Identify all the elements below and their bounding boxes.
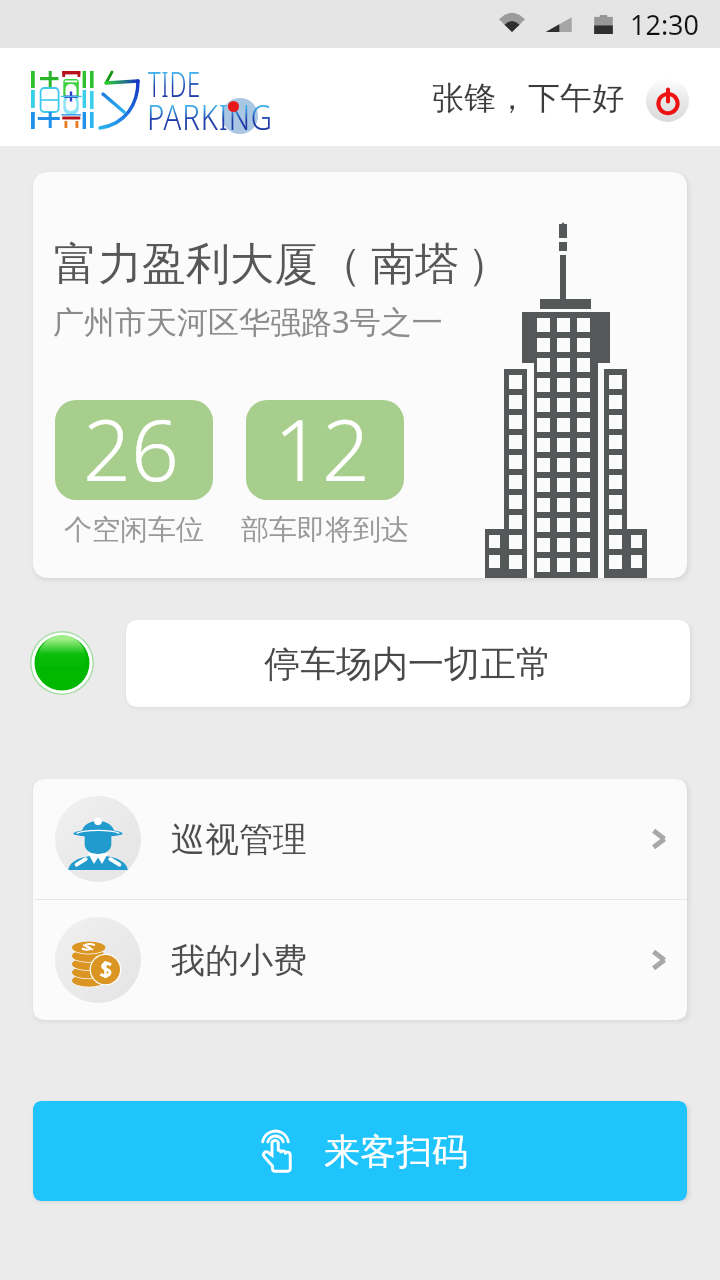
staticText: 我的小费: [171, 939, 307, 982]
staticText: 12:30: [630, 6, 700, 43]
staticText: 南塔: [371, 237, 459, 292]
staticText: 部车即将到达: [241, 512, 409, 547]
staticText: TIDE: [148, 61, 201, 107]
staticText: 停车场内一切正常: [264, 641, 552, 686]
button[interactable]: 巡视管理: [33, 779, 687, 899]
button[interactable]: Power: [646, 79, 689, 122]
button[interactable]: 来客扫码: [33, 1101, 687, 1201]
staticText: 巡视管理: [171, 818, 307, 861]
staticText: （: [318, 237, 362, 292]
button[interactable]: 停车场内一切正常: [126, 620, 690, 707]
staticText: 广州市天河区华强路3号之一: [53, 300, 443, 342]
staticText: 来客扫码: [324, 1129, 468, 1174]
button[interactable]: 我的小费: [33, 900, 687, 1020]
staticText: 12: [274, 400, 370, 491]
staticText: 个空闲车位: [64, 512, 204, 547]
staticText: PARKING: [147, 94, 273, 140]
staticText: 26: [83, 400, 179, 491]
staticText: ）: [467, 237, 511, 292]
staticText: 富力盈利大厦: [54, 237, 318, 292]
staticText: 张锋，下午好: [432, 78, 624, 118]
